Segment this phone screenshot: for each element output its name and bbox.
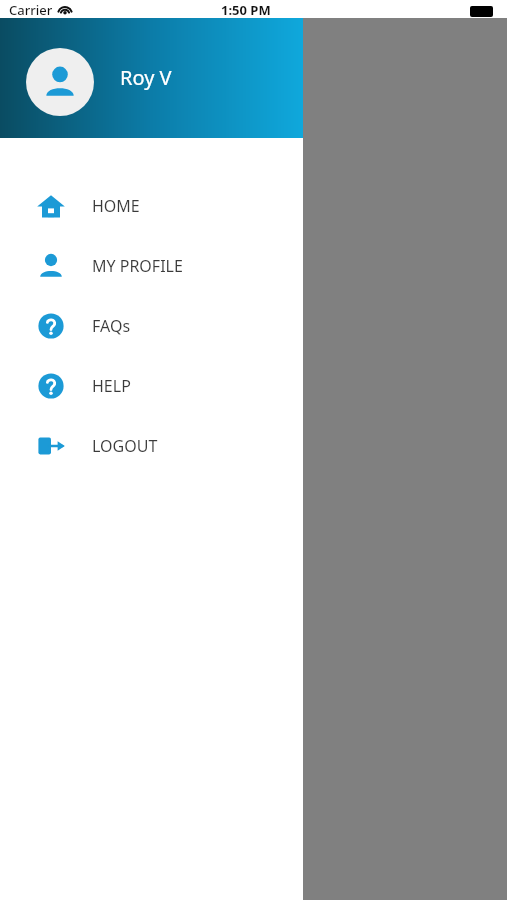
staticText: Roy V (120, 64, 172, 91)
button[interactable]: HELP (0, 356, 303, 416)
staticText: FAQs (92, 315, 131, 337)
staticText: LOGOUT (92, 435, 158, 457)
button[interactable]: FAQs (0, 296, 303, 356)
button[interactable]: Roy V (0, 0, 303, 138)
button[interactable]: MY PROFILE (0, 236, 303, 296)
staticText: Contact Us (283, 576, 370, 599)
button[interactable]: HOME (0, 176, 303, 236)
button[interactable]: FILE A CLAIM (0, 795, 507, 900)
staticText: HOME (92, 195, 140, 217)
staticText: 1:50 PM (221, 1, 271, 19)
button[interactable]: LOGOUT (0, 416, 303, 476)
staticText: HELP (92, 375, 131, 397)
button[interactable]: Contact Us (256, 492, 396, 629)
staticText: FILE A CLAIM (232, 859, 337, 882)
staticText: MY PROFILE (92, 255, 183, 277)
staticText: Carrier (9, 1, 53, 19)
